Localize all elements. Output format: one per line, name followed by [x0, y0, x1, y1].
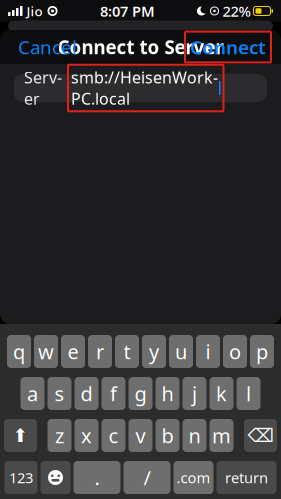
staticText: s: [54, 380, 64, 407]
staticText: f: [110, 380, 117, 407]
button[interactable]: y: [142, 335, 166, 368]
staticText: Jio: [26, 2, 42, 20]
staticText: l: [246, 380, 251, 407]
staticText: g: [134, 380, 146, 407]
button[interactable]: v: [128, 419, 152, 452]
staticText: y: [149, 338, 159, 365]
staticText: k: [216, 380, 227, 407]
staticText: Server: [24, 67, 62, 109]
staticText: n: [188, 422, 200, 449]
button[interactable]: Cancel: [10, 29, 85, 65]
button[interactable]: o: [223, 335, 247, 368]
staticText: j: [192, 380, 197, 407]
button[interactable]: .: [73, 461, 120, 494]
button[interactable]: x: [74, 419, 98, 452]
staticText: .com: [176, 468, 210, 487]
button[interactable]: c: [101, 419, 125, 452]
button[interactable]: z: [47, 419, 71, 452]
staticText: c: [108, 422, 118, 449]
staticText: x: [81, 422, 92, 449]
staticText: q: [13, 338, 25, 365]
button[interactable]: a: [20, 377, 44, 410]
button[interactable]: Connect: [185, 32, 271, 62]
staticText: 123: [9, 468, 33, 487]
staticText: ⌫: [247, 425, 273, 446]
staticText: ⬆: [12, 425, 28, 446]
staticText: a: [27, 380, 38, 407]
staticText: Connect to Server: [57, 35, 223, 59]
staticText: p: [256, 338, 268, 365]
staticText: t: [123, 338, 130, 365]
button[interactable]: j: [182, 377, 206, 410]
button[interactable]: Shift: [4, 419, 37, 452]
staticText: smb://HeisenWork-PC.local: [71, 67, 218, 109]
staticText: d: [80, 380, 92, 407]
staticText: r: [96, 338, 104, 365]
button[interactable]: e: [61, 335, 85, 368]
button[interactable]: s: [47, 377, 71, 410]
button[interactable]: return: [216, 461, 276, 494]
button[interactable]: r: [88, 335, 112, 368]
staticText: return: [225, 468, 268, 487]
staticText: u: [175, 338, 187, 365]
button[interactable]: d: [74, 377, 98, 410]
button[interactable]: i: [196, 335, 220, 368]
button[interactable]: 123: [4, 461, 37, 494]
staticText: m: [212, 422, 231, 449]
button[interactable]: f: [101, 377, 125, 410]
staticText: Connect: [190, 35, 266, 59]
button[interactable]: q: [7, 335, 31, 368]
button[interactable]: .com: [173, 461, 213, 494]
staticText: 8:07 PM: [100, 1, 155, 21]
button[interactable]: t: [115, 335, 139, 368]
staticText: i: [205, 338, 210, 365]
button[interactable]: k: [209, 377, 233, 410]
button[interactable]: g: [128, 377, 152, 410]
staticText: v: [135, 422, 145, 449]
staticText: h: [161, 380, 173, 407]
button[interactable]: w: [34, 335, 58, 368]
staticText: e: [67, 338, 78, 365]
button[interactable]: Delete: [244, 419, 277, 452]
staticText: o: [229, 338, 241, 365]
button[interactable]: l: [236, 377, 260, 410]
button[interactable]: m: [209, 419, 233, 452]
staticText: b: [161, 422, 173, 449]
staticText: z: [55, 422, 64, 449]
button[interactable]: u: [169, 335, 193, 368]
button[interactable]: h: [155, 377, 179, 410]
button[interactable]: Emoji: [40, 461, 70, 494]
button[interactable]: p: [250, 335, 274, 368]
button[interactable]: /: [123, 461, 170, 494]
staticText: 22%: [222, 1, 250, 21]
button[interactable]: n: [182, 419, 206, 452]
staticText: Cancel: [18, 35, 77, 59]
staticText: /: [143, 464, 150, 491]
staticText: w: [38, 338, 54, 365]
button[interactable]: b: [155, 419, 179, 452]
staticText: .: [94, 464, 99, 491]
